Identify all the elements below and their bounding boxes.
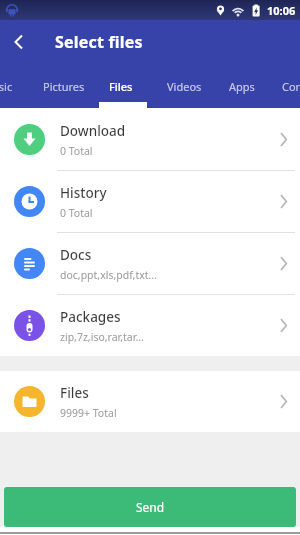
staticText: 10:06 bbox=[267, 3, 296, 18]
staticText: Music bbox=[0, 79, 13, 94]
button[interactable]: Contacts bbox=[282, 64, 300, 108]
button[interactable]: Send bbox=[4, 487, 296, 527]
staticText: Files bbox=[60, 384, 89, 402]
button[interactable]: Files bbox=[0, 371, 300, 432]
button[interactable]: Packages bbox=[0, 295, 300, 356]
staticText: doc,ppt,xls,pdf,txt... bbox=[60, 268, 157, 282]
button[interactable]: Apps bbox=[229, 64, 255, 108]
staticText: Send bbox=[136, 499, 165, 515]
staticText: History bbox=[60, 184, 107, 202]
button[interactable]: Videos bbox=[167, 64, 202, 108]
staticText: Select files bbox=[55, 31, 143, 53]
staticText: Apps bbox=[229, 79, 255, 94]
staticText: Packages bbox=[60, 308, 121, 326]
staticText: Contacts bbox=[282, 79, 300, 94]
button[interactable]: Docs bbox=[0, 233, 300, 294]
staticText: 9999+ Total bbox=[60, 406, 117, 420]
staticText: Download bbox=[60, 122, 126, 140]
staticText: 0 Total bbox=[60, 206, 93, 220]
button[interactable]: Files bbox=[109, 64, 133, 108]
button[interactable]: Download bbox=[0, 109, 300, 170]
staticText: 0 Total bbox=[60, 144, 93, 158]
button[interactable] bbox=[0, 22, 40, 62]
staticText: Videos bbox=[167, 79, 202, 94]
button[interactable]: Pictures bbox=[43, 64, 85, 108]
staticText: Files bbox=[109, 79, 133, 94]
button[interactable]: Music bbox=[0, 64, 13, 108]
staticText: zip,7z,iso,rar,tar... bbox=[60, 330, 144, 344]
button[interactable]: History bbox=[0, 171, 300, 232]
staticText: Docs bbox=[60, 246, 92, 264]
staticText: Pictures bbox=[43, 79, 85, 94]
